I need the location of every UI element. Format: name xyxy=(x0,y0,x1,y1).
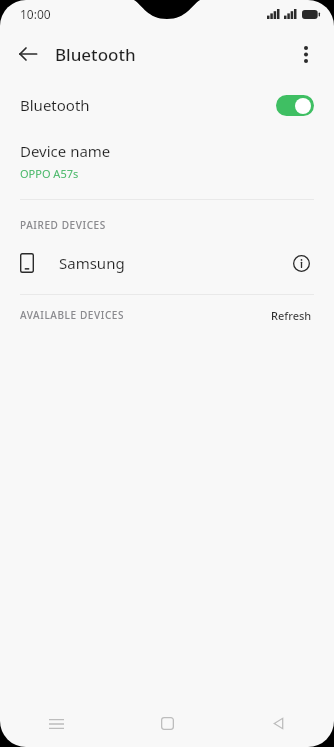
button[interactable]: Back xyxy=(223,700,334,747)
staticText: Bluetooth xyxy=(20,95,90,115)
button[interactable]: Refresh xyxy=(269,303,314,328)
button[interactable]: Device name xyxy=(0,129,334,187)
button[interactable]: Bluetooth toggle, on xyxy=(276,95,314,116)
button[interactable]: Bluetooth xyxy=(0,81,334,129)
staticText: Device name xyxy=(20,141,111,161)
staticText: PAIRED DEVICES xyxy=(20,218,106,232)
staticText: 10:00 xyxy=(20,6,51,22)
button[interactable]: Recent apps xyxy=(0,700,112,747)
staticText: OPPO A57s xyxy=(20,166,79,181)
button[interactable]: Back xyxy=(8,34,48,74)
button[interactable]: More options xyxy=(286,34,326,74)
button[interactable]: Home xyxy=(112,700,223,747)
staticText: Refresh xyxy=(271,308,312,323)
staticText: Bluetooth xyxy=(55,43,136,66)
staticText: Samsung xyxy=(59,253,125,273)
button[interactable]: Samsung xyxy=(0,240,334,286)
button[interactable]: Device details xyxy=(288,250,314,276)
staticText: AVAILABLE DEVICES xyxy=(20,308,125,322)
